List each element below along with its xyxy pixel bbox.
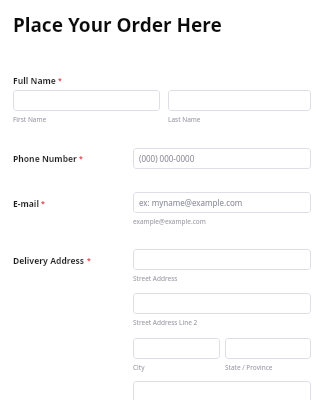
staticText: Place Your Order Here xyxy=(13,12,222,38)
staticText: (000) 000-0000 xyxy=(139,153,195,164)
button[interactable]: Postal Code xyxy=(133,381,311,400)
staticText: City xyxy=(133,363,145,372)
staticText: * xyxy=(41,199,45,209)
button[interactable]: Delivery Address xyxy=(13,255,91,267)
button[interactable]: City xyxy=(133,338,220,359)
staticText: example@example.com xyxy=(133,217,206,226)
button[interactable]: Full Name xyxy=(13,75,62,87)
staticText: Delivery Address xyxy=(13,255,85,267)
staticText: Full Name xyxy=(13,75,56,87)
staticText: Last Name xyxy=(168,115,201,124)
staticText: * xyxy=(79,154,83,164)
button[interactable]: E-mail xyxy=(13,198,45,210)
button[interactable]: Street Address xyxy=(133,249,311,270)
button[interactable]: Phone Number xyxy=(13,153,83,165)
staticText: * xyxy=(58,76,62,86)
staticText: Phone Number xyxy=(13,153,77,165)
staticText: * xyxy=(87,256,91,266)
staticText: ex: myname@example.com xyxy=(139,197,243,208)
staticText: State / Province xyxy=(225,363,273,372)
staticText: Street Address Line 2 xyxy=(133,318,198,327)
button[interactable]: E-mail xyxy=(133,192,311,213)
button[interactable]: State / Province xyxy=(225,338,311,359)
button[interactable]: Street Address Line 2 xyxy=(133,293,311,314)
staticText: E-mail xyxy=(13,198,39,210)
button[interactable]: Last Name xyxy=(168,90,311,111)
button[interactable]: Phone Number xyxy=(133,148,311,169)
staticText: First Name xyxy=(13,115,47,124)
staticText: Street Address xyxy=(133,274,178,283)
button[interactable]: First Name xyxy=(13,90,160,111)
